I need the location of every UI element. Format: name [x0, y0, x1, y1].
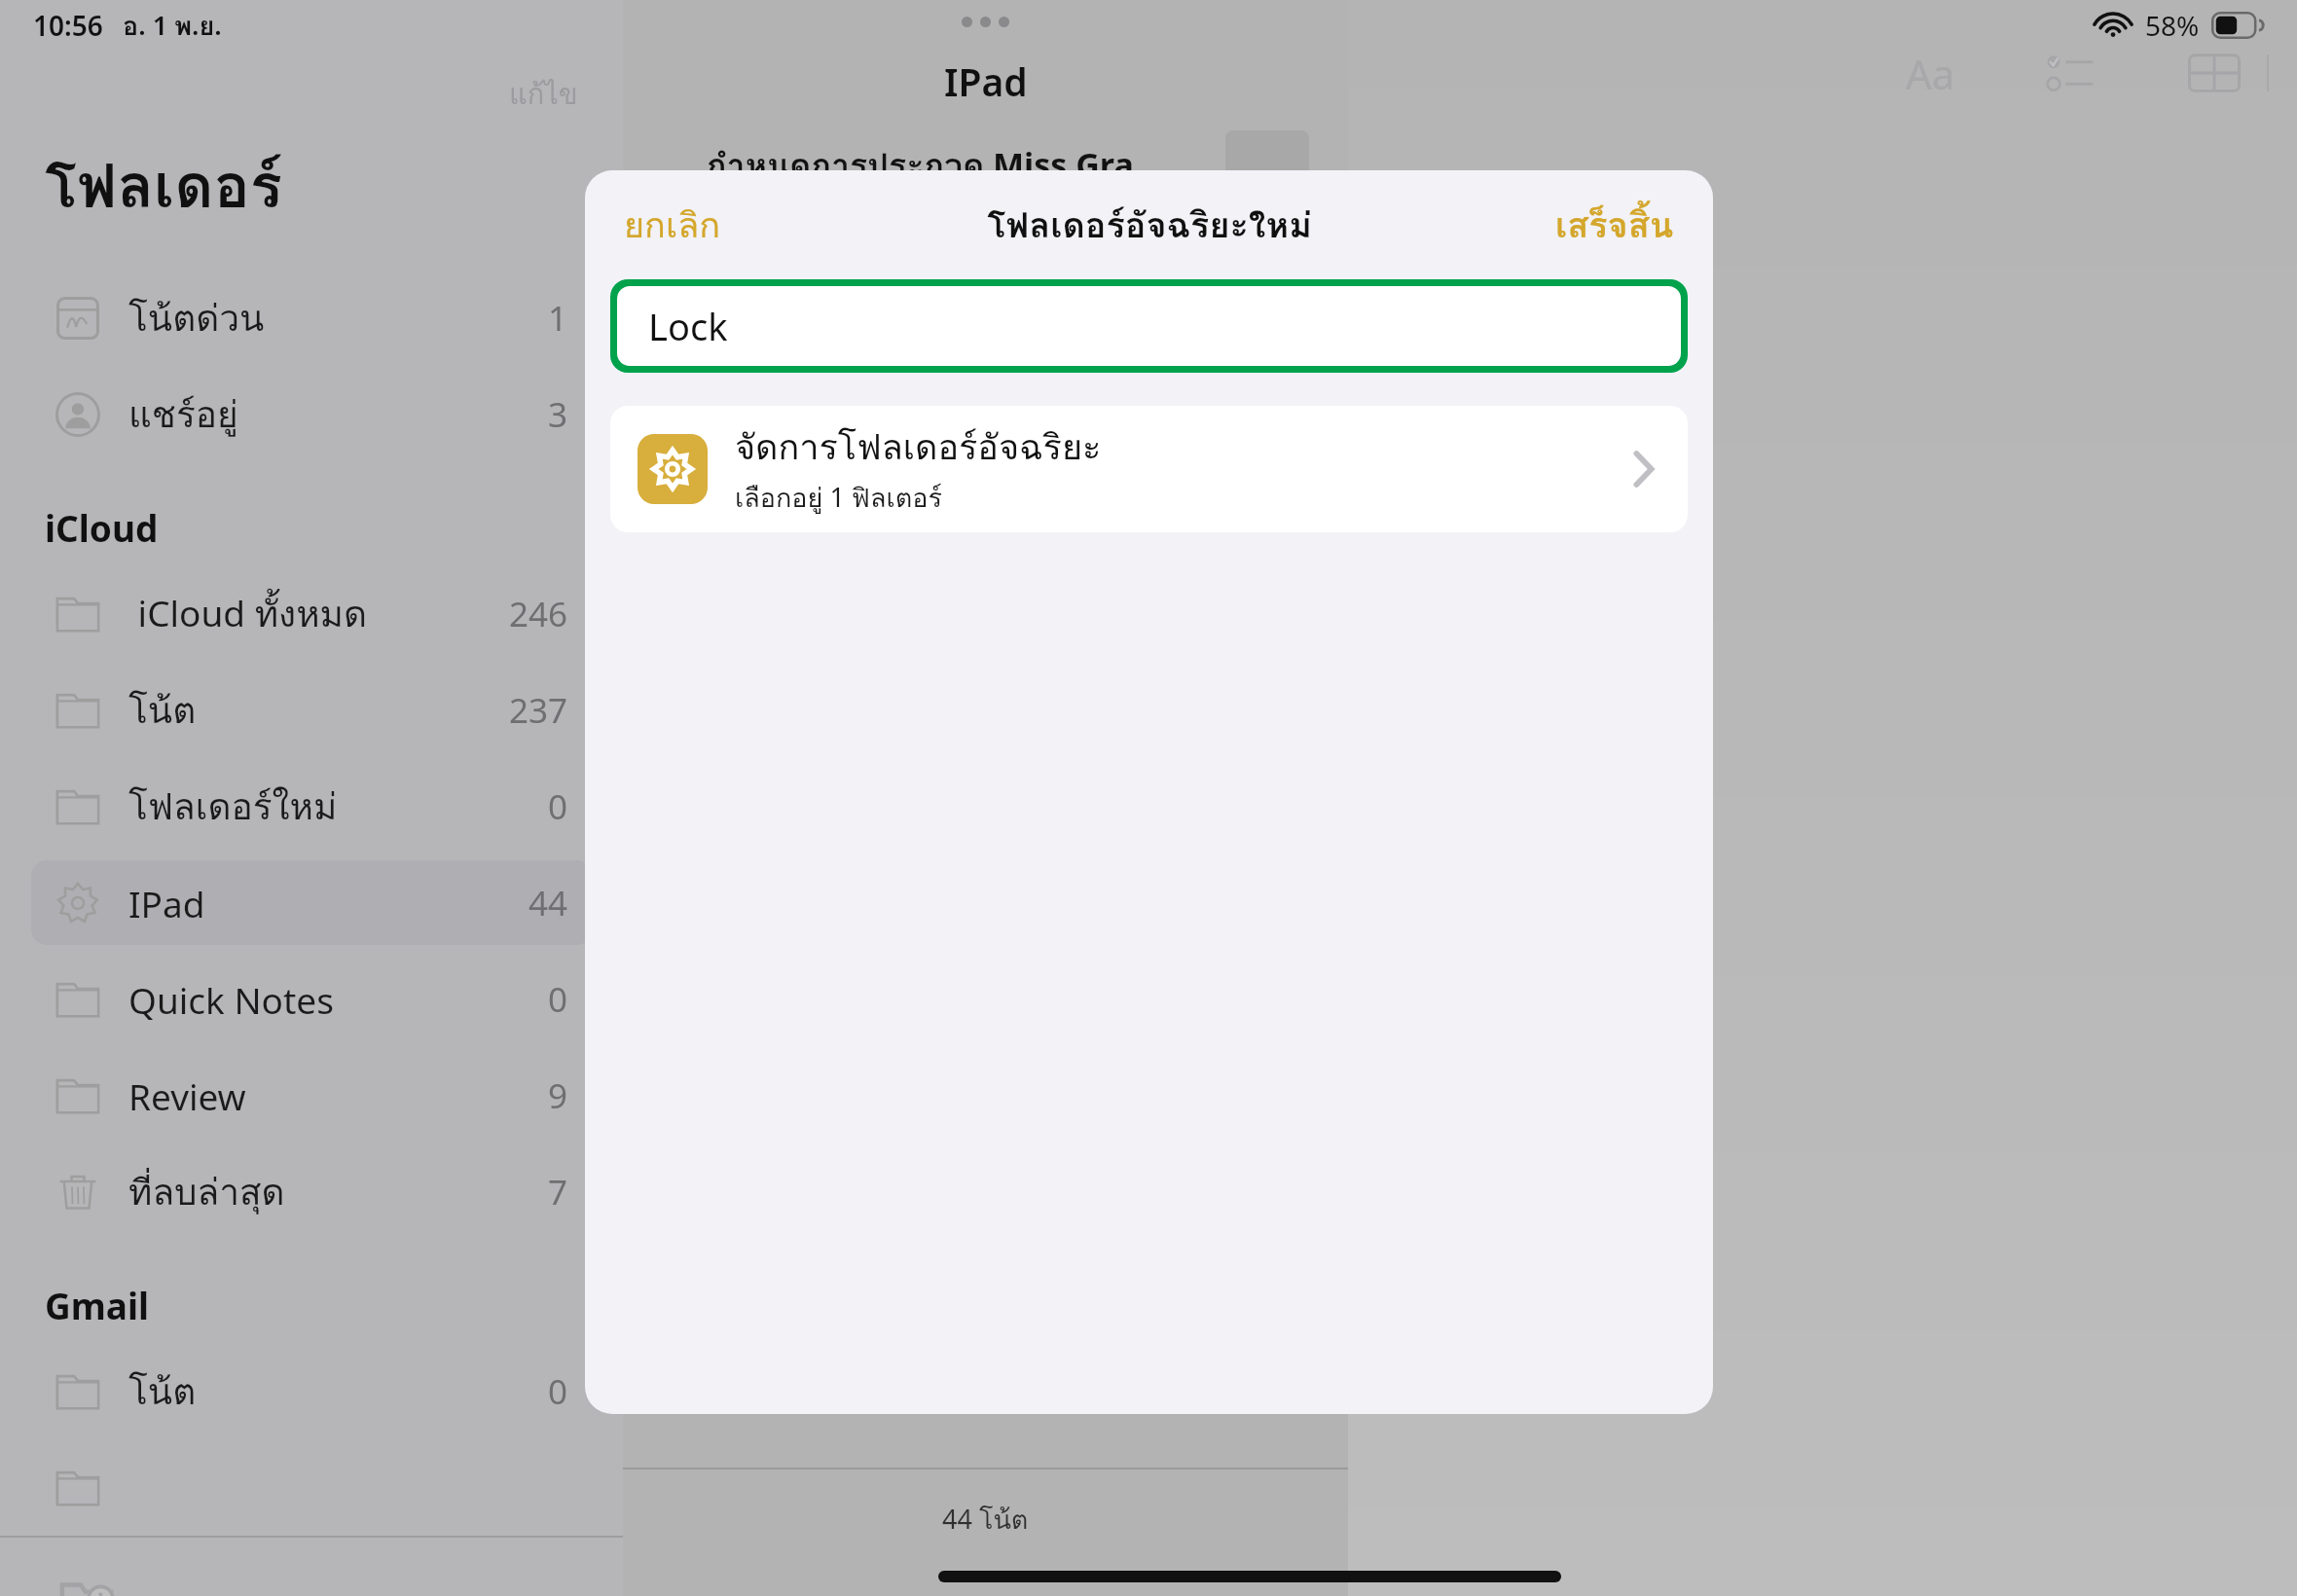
- button[interactable]: Table: [2177, 36, 2251, 110]
- button[interactable]: โน้ตด่วน: [31, 275, 592, 360]
- button[interactable]: โฟลเดอร์ใหม่: [31, 764, 592, 849]
- button[interactable]: New Folder: [49, 1575, 125, 1596]
- staticText: 0: [548, 976, 568, 1023]
- staticText: 44 โน้ต: [942, 1499, 1029, 1541]
- button[interactable]: แก้ไข: [501, 64, 586, 125]
- staticText: 1: [548, 295, 568, 342]
- staticText: 3: [548, 391, 568, 438]
- button[interactable]: เสร็จสิ้น: [1546, 186, 1684, 265]
- button[interactable]: ยกเลิก: [614, 186, 731, 265]
- button[interactable]: โน้ต: [31, 1349, 592, 1433]
- button[interactable]: Format: [1893, 36, 1967, 110]
- staticText: Lock: [648, 301, 728, 351]
- staticText: 237: [509, 687, 568, 734]
- staticText: 58%: [2145, 7, 2200, 44]
- staticText: ที่ลบล่าสุด: [128, 1163, 285, 1220]
- staticText: Gmail: [45, 1281, 150, 1329]
- button[interactable]: Review: [31, 1053, 592, 1138]
- staticText: จัดการโฟลเดอร์อัจฉริยะ: [735, 419, 1102, 475]
- staticText: 10:56: [33, 7, 103, 44]
- staticText: โน้ต: [128, 681, 197, 739]
- button[interactable]: iCloud ทั้งหมด: [31, 571, 592, 656]
- button[interactable]: โน้ต: [31, 668, 592, 752]
- button[interactable]: แชร์อยู่: [31, 372, 592, 456]
- staticText: Quick Notes: [128, 975, 334, 1024]
- staticText: 0: [548, 1368, 568, 1415]
- button[interactable]: ที่ลบล่าสุด: [31, 1149, 592, 1234]
- staticText: Aa: [1906, 46, 1955, 101]
- staticText: iCloud ทั้งหมด: [128, 585, 367, 642]
- button[interactable]: Lock: [610, 279, 1688, 373]
- staticText: อ. 1 พ.ย.: [123, 5, 222, 47]
- staticText: โฟลเดอร์อัจฉริยะใหม่: [987, 198, 1312, 253]
- staticText: แชร์อยู่: [128, 385, 238, 443]
- staticText: 246: [509, 591, 568, 637]
- staticText: โฟลเดอร์: [45, 138, 283, 235]
- staticText: IPad: [128, 879, 205, 927]
- staticText: เลือกอยู่ 1 ฟิลเตอร์: [735, 477, 942, 519]
- staticText: แก้ไข: [509, 72, 578, 117]
- staticText: iCloud: [45, 503, 159, 552]
- staticText: กำหนดการประกวด Miss Gra...: [707, 139, 1162, 192]
- button[interactable]: Quick Notes: [31, 957, 592, 1041]
- staticText: เสร็จสิ้น: [1555, 198, 1674, 253]
- staticText: Review: [128, 1071, 246, 1120]
- staticText: โฟลเดอร์ใหม่: [128, 778, 338, 835]
- staticText: 7: [548, 1169, 568, 1215]
- staticText: 9: [548, 1072, 568, 1119]
- button[interactable]: Checklist: [2035, 36, 2109, 110]
- staticText: 0: [548, 783, 568, 830]
- button[interactable]: IPad: [31, 860, 592, 945]
- staticText: ยกเลิก: [624, 198, 721, 253]
- staticText: 44: [529, 880, 568, 926]
- button[interactable]: จัดการโฟลเดอร์อัจฉริยะ: [610, 406, 1688, 532]
- staticText: โน้ต: [128, 1362, 197, 1420]
- staticText: โน้ตด่วน: [128, 289, 265, 346]
- staticText: IPad: [944, 55, 1028, 107]
